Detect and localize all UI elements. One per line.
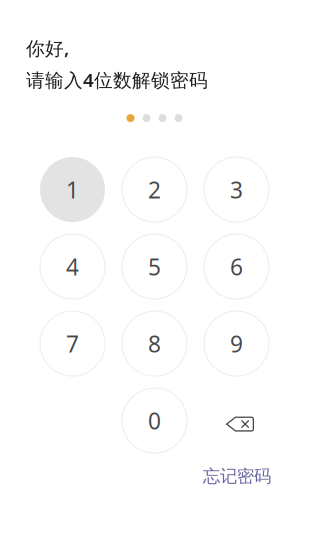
button[interactable]: 5 bbox=[122, 234, 187, 299]
staticText: 2 bbox=[148, 174, 161, 205]
button[interactable]: 6 bbox=[204, 234, 269, 299]
button[interactable]: 8 bbox=[122, 311, 187, 376]
staticText: 5 bbox=[148, 251, 161, 282]
button[interactable]: 7 bbox=[40, 311, 105, 376]
button[interactable]: 2 bbox=[122, 157, 187, 222]
staticText: 请输入4位数解锁密码 bbox=[26, 67, 208, 92]
button[interactable]: 9 bbox=[204, 311, 269, 376]
button[interactable]: 0 bbox=[122, 388, 187, 453]
staticText: 3 bbox=[230, 174, 243, 205]
staticText: 1 bbox=[66, 174, 79, 205]
staticText: 忘记密码 bbox=[203, 466, 271, 487]
button[interactable]: 3 bbox=[204, 157, 269, 222]
staticText: 9 bbox=[230, 328, 243, 359]
staticText: 8 bbox=[148, 328, 161, 359]
button[interactable]: 忘记密码 bbox=[203, 466, 271, 487]
button[interactable]: Delete bbox=[204, 388, 269, 453]
staticText: 6 bbox=[230, 251, 243, 282]
staticText: 7 bbox=[66, 328, 79, 359]
button[interactable]: 4 bbox=[40, 234, 105, 299]
button[interactable]: 1 bbox=[40, 157, 105, 222]
staticText: 你好, bbox=[26, 35, 69, 60]
staticText: 0 bbox=[148, 405, 161, 436]
staticText: 4 bbox=[66, 251, 79, 282]
